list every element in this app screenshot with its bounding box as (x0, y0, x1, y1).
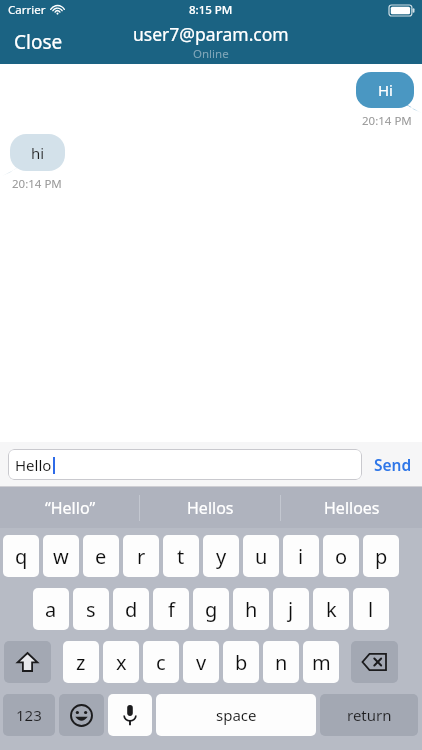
staticText: z (76, 649, 86, 676)
button[interactable]: o (323, 535, 359, 577)
staticText: Helloes (324, 497, 380, 519)
staticText: t (177, 543, 185, 570)
button[interactable]: c (143, 641, 179, 683)
staticText: o (335, 543, 348, 570)
staticText: 20:14 PM (12, 176, 62, 192)
button[interactable]: Emoji keyboard (59, 694, 104, 736)
button[interactable]: n (263, 641, 299, 683)
staticText: 20:14 PM (362, 113, 412, 129)
staticText: r (137, 543, 146, 570)
button[interactable]: x (103, 641, 139, 683)
staticText: return (347, 705, 392, 725)
staticText: l (368, 596, 374, 623)
staticText: Online (193, 46, 229, 62)
button[interactable]: Helloes (281, 487, 422, 528)
button[interactable]: Shift (4, 641, 51, 683)
staticText: hi (31, 143, 45, 163)
button[interactable]: y (203, 535, 239, 577)
staticText: Hello (15, 455, 52, 475)
button[interactable]: return (320, 694, 418, 736)
button[interactable]: Dictation (108, 694, 152, 736)
staticText: g (205, 596, 218, 623)
staticText: c (156, 649, 166, 676)
staticText: p (375, 543, 388, 570)
staticText: “Hello” (45, 497, 96, 519)
button[interactable]: l (353, 588, 389, 630)
button[interactable]: u (243, 535, 279, 577)
button[interactable]: Backspace (351, 641, 398, 683)
button[interactable]: s (73, 588, 109, 630)
staticText: s (86, 596, 96, 623)
staticText: m (312, 649, 331, 676)
staticText: v (196, 649, 207, 676)
staticText: q (15, 543, 28, 570)
staticText: w (53, 543, 69, 570)
button[interactable]: p (363, 535, 399, 577)
staticText: y (216, 543, 227, 570)
staticText: space (216, 705, 257, 725)
button[interactable]: g (193, 588, 229, 630)
staticText: u (255, 543, 268, 570)
staticText: Hellos (187, 497, 234, 519)
button[interactable]: v (183, 641, 219, 683)
button[interactable]: z (63, 641, 99, 683)
button[interactable]: b (223, 641, 259, 683)
button[interactable]: 123 (3, 694, 55, 736)
staticText: k (326, 596, 337, 623)
staticText: e (95, 543, 107, 570)
button[interactable]: “Hello” (0, 487, 140, 528)
staticText: user7@param.com (133, 22, 289, 46)
button[interactable]: j (273, 588, 309, 630)
staticText: d (125, 596, 138, 623)
staticText: j (288, 596, 294, 623)
button[interactable]: m (303, 641, 339, 683)
button[interactable]: Close (0, 23, 77, 61)
staticText: Send (374, 454, 412, 475)
staticText: Carrier (8, 2, 46, 18)
button[interactable]: f (153, 588, 189, 630)
button[interactable]: Hello (8, 449, 362, 480)
button[interactable]: e (83, 535, 119, 577)
button[interactable]: h (233, 588, 269, 630)
button[interactable]: t (163, 535, 199, 577)
staticText: 123 (16, 705, 42, 725)
staticText: a (45, 596, 57, 623)
button[interactable]: i (283, 535, 319, 577)
staticText: Hi (378, 80, 393, 100)
button[interactable]: w (43, 535, 79, 577)
button[interactable]: space (156, 694, 316, 736)
staticText: n (275, 649, 288, 676)
button[interactable]: Hellos (140, 487, 281, 528)
button[interactable]: r (123, 535, 159, 577)
staticText: i (298, 543, 304, 570)
button[interactable]: q (3, 535, 39, 577)
staticText: h (245, 596, 258, 623)
staticText: 8:15 PM (189, 2, 233, 18)
staticText: f (168, 596, 175, 623)
button[interactable]: Send (364, 445, 422, 484)
staticText: x (116, 649, 127, 676)
staticText: b (235, 649, 248, 676)
button[interactable]: k (313, 588, 349, 630)
button[interactable]: d (113, 588, 149, 630)
button[interactable]: a (33, 588, 69, 630)
staticText: Close (14, 29, 63, 55)
